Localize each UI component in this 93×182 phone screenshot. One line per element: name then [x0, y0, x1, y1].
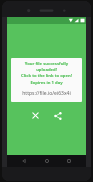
- staticText: Expires in 1 day: [14, 80, 79, 86]
- staticText: https://file.io/ei63x4i: [14, 90, 79, 97]
- button[interactable]: Close: [29, 109, 42, 122]
- button[interactable]: Back: [18, 155, 30, 167]
- button[interactable]: Home: [41, 155, 53, 167]
- button[interactable]: Recent apps: [63, 155, 75, 167]
- staticText: Click to the link to open!: [14, 73, 79, 79]
- button[interactable]: Your file successfully uploaded!: [11, 58, 82, 102]
- button[interactable]: Share: [51, 109, 64, 122]
- staticText: Your file successfully uploaded!: [14, 61, 79, 72]
